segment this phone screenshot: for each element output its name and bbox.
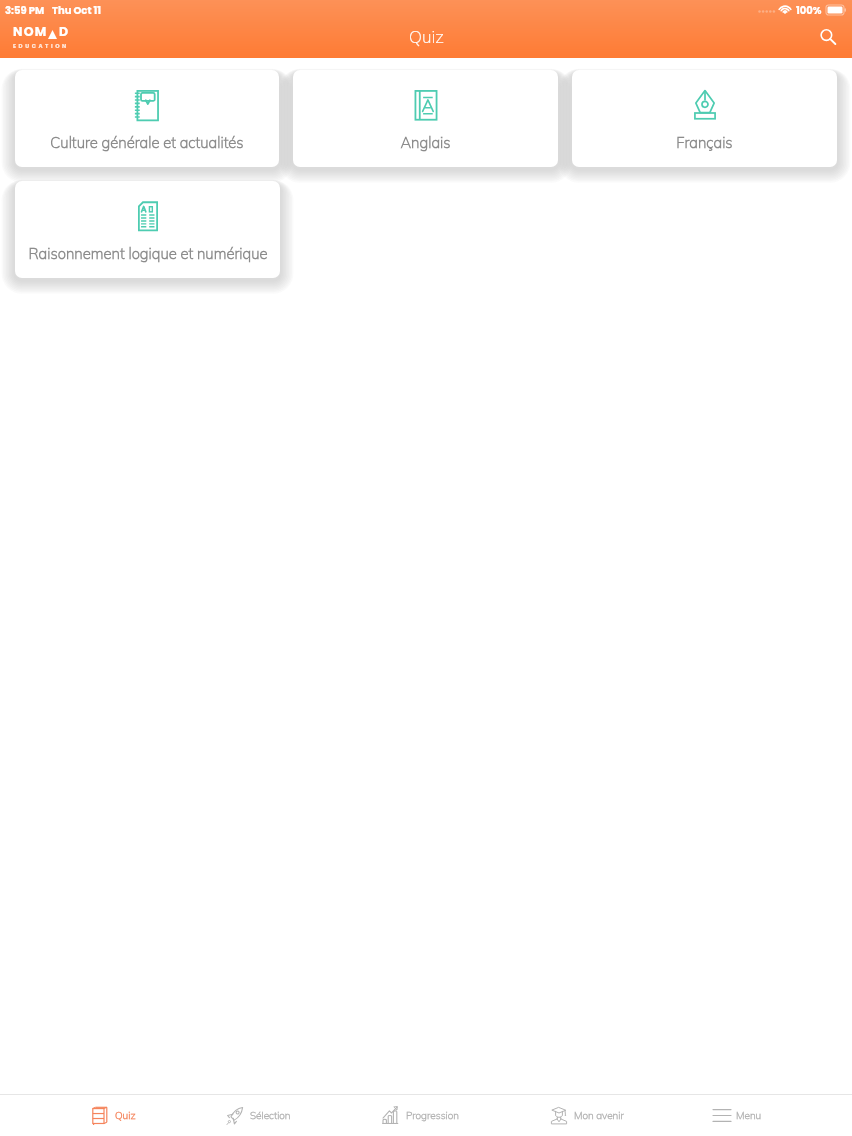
staticText: Quiz [115,1109,136,1122]
staticText: NOM [13,23,48,40]
button[interactable]: Culture générale et actualités [15,70,279,167]
staticText: EDUCATION [13,42,69,50]
staticText: 100% [796,3,822,17]
staticText: Sélection [250,1109,291,1122]
button[interactable]: Menu [713,1095,762,1136]
button[interactable]: Progression [381,1095,459,1136]
staticText: Progression [406,1109,459,1122]
staticText: Mon avenir [574,1109,624,1122]
staticText: Français [676,133,733,152]
staticText: 3:59 PM [5,3,45,17]
staticText: Thu Oct 11 [52,3,102,17]
button[interactable]: Quiz [90,1095,136,1136]
button[interactable]: Raisonnement logique et numérique [15,181,280,278]
staticText: Raisonnement logique et numérique [28,244,268,263]
button[interactable]: Mon avenir [549,1095,624,1136]
staticText: D [59,23,70,40]
button[interactable]: Anglais [293,70,558,167]
staticText: Menu [736,1109,762,1122]
staticText: Quiz [409,26,444,47]
button[interactable]: Français [572,70,837,167]
button[interactable]: Search [815,24,841,50]
staticText: Anglais [400,133,451,152]
staticText: Culture générale et actualités [50,133,244,152]
button[interactable]: Sélection [225,1095,291,1136]
